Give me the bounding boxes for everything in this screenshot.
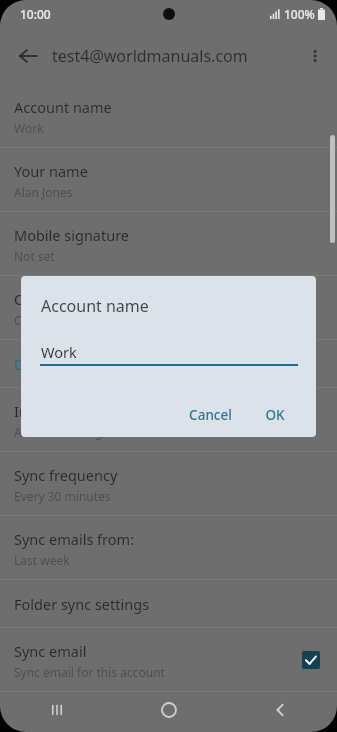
button[interactable]: Default account	[0, 340, 337, 388]
staticText: Not set	[14, 248, 55, 264]
button[interactable]: Back	[4, 32, 52, 80]
staticText: Sync emails from:	[14, 529, 135, 549]
staticText: Out of office reply	[14, 289, 137, 309]
button[interactable]: Sync frequency	[0, 452, 337, 516]
staticText: 10:00	[20, 6, 51, 22]
staticText: OK	[265, 406, 285, 424]
staticText: Cancel	[189, 406, 232, 424]
staticText: test4@worldmanuals.com	[52, 45, 293, 67]
staticText: Default account	[14, 354, 122, 374]
staticText: Account name	[14, 97, 112, 117]
button[interactable]: Out of office reply	[0, 276, 337, 340]
staticText: Work	[41, 342, 77, 362]
staticText: Mobile signature	[14, 225, 130, 245]
button[interactable]: Mobile signature	[0, 212, 337, 276]
button[interactable]: Account name	[0, 84, 337, 148]
staticText: Sync email for this account	[14, 664, 165, 680]
staticText: Alan Jones	[14, 184, 73, 200]
staticText: Every 30 minutes	[14, 488, 111, 504]
button[interactable]: Sync emails from:	[0, 516, 337, 580]
staticText: Account name	[41, 295, 149, 317]
staticText: Account settings	[14, 424, 108, 440]
staticText: Your name	[14, 161, 88, 181]
button[interactable]: Your name	[0, 148, 337, 212]
button[interactable]: Back	[225, 688, 337, 732]
button[interactable]: OK	[249, 398, 301, 432]
button[interactable]: Recents	[0, 688, 113, 732]
button[interactable]: Cancel	[172, 398, 248, 432]
staticText: Sync frequency	[14, 465, 118, 485]
button[interactable]: Home	[113, 688, 225, 732]
staticText: Incoming settings	[14, 401, 137, 421]
button[interactable]: Sync email checkbox	[302, 651, 320, 669]
button[interactable]: Sync email	[0, 628, 337, 692]
staticText: Folder sync settings	[14, 594, 150, 614]
button[interactable]: Incoming settings	[0, 388, 337, 452]
staticText: Work	[14, 120, 44, 136]
staticText: Sync email	[14, 641, 87, 661]
staticText: 100%	[284, 6, 315, 22]
staticText: Off	[14, 312, 32, 328]
staticText: Last week	[14, 552, 70, 568]
button[interactable]: More options	[293, 34, 337, 78]
button[interactable]: Folder sync settings	[0, 580, 337, 628]
